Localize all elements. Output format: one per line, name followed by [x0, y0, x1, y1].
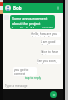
- button[interactable]: Contact photo: [5, 5, 11, 11]
- staticText: I am good thanks: [41, 40, 61, 45]
- staticText: here kind of long: [12, 26, 40, 28]
- button[interactable]: Hello, how are you doing today?: [31, 32, 61, 37]
- button[interactable]: you got to connect: [13, 67, 37, 76]
- button[interactable]: More options: [54, 4, 62, 12]
- staticText: Type a message: [5, 84, 28, 88]
- button[interactable]: Nice to hear that: [41, 50, 61, 55]
- button[interactable]: I am good thanks: [41, 40, 61, 45]
- staticText: Some announcement about the project: [12, 16, 53, 26]
- staticText: Nice to hear that: [41, 50, 61, 55]
- staticText: Bob: [13, 5, 22, 11]
- button[interactable]: See you soon, bye!: [37, 59, 61, 64]
- button[interactable]: Some announcement about the project: [10, 15, 55, 29]
- staticText: tap to reply: [25, 76, 42, 80]
- staticText: See you soon, bye!: [37, 59, 61, 64]
- staticText: Hello, how are you doing today?: [31, 32, 61, 37]
- staticText: you got to connect: [14, 68, 36, 75]
- button[interactable]: Send: [50, 91, 57, 98]
- staticText: 10:12 pm: [42, 25, 53, 28]
